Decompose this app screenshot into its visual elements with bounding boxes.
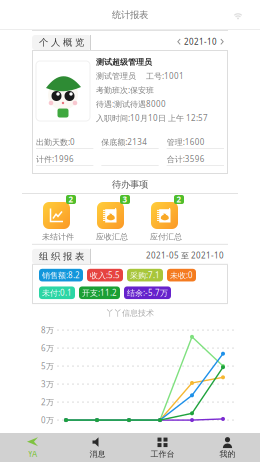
staticText: 2 [68,194,73,205]
staticText: 2021-10 [184,36,217,47]
staticText: 2万 [41,397,54,407]
staticText: 保底额:2134 [101,137,147,147]
staticText: 2021-05 至 2021-10 [146,250,224,261]
staticText: 0万 [41,415,54,425]
staticText: 待办事项 [112,179,148,190]
staticText: 工作台 [150,449,174,459]
staticText: 开支:11.2 [82,287,117,298]
staticText: 应付汇总 [150,232,182,242]
staticText: 销售额:8.2 [42,270,80,280]
staticText: 消息 [89,449,105,459]
button[interactable]: 2021-10 [177,36,228,50]
staticText: 收入:5.5 [90,270,120,280]
staticText: 丫丫信息技术 [106,308,154,318]
button[interactable]: 3 [85,195,139,242]
button[interactable]: 组 织 报 表 [32,249,91,264]
button[interactable]: 2 [31,195,85,242]
staticText: 应收汇总 [96,232,128,242]
staticText: 入职时间:10月10日 上午 12:57 [96,113,208,123]
staticText: 计件:1996 [36,154,74,164]
button[interactable]: 工作台 [130,433,195,462]
button[interactable]: 我的 [195,433,260,462]
staticText: 3万 [41,379,54,389]
staticText: 待遇:测试待遇8000 [96,99,166,109]
staticText: 3 [122,194,127,205]
button[interactable]: 2 [139,195,193,242]
staticText: 个 人 概 览 [39,37,84,48]
staticText: YA [28,449,37,459]
staticText: 管理:1600 [167,137,205,147]
staticText: 结余:-5.7万 [127,287,168,298]
staticText: 工号:1001 [146,71,184,81]
staticText: 我的 [219,449,235,459]
staticText: 8万 [41,325,54,335]
staticText: 采购:7.1 [130,270,160,280]
staticText: 未结计件 [42,232,74,242]
button[interactable]: 2021-05 至 2021-10 [146,250,228,264]
staticText: 测试管理员 [96,71,136,81]
staticText: 考勤班次:保安班 [96,85,154,95]
button[interactable]: YA [0,433,65,462]
button[interactable]: 个 人 概 览 [32,35,91,50]
staticText: 组 织 报 表 [39,251,84,262]
staticText: 合计:3596 [167,154,205,164]
staticText: 未付:0.1 [42,287,72,298]
button[interactable]: 消息 [65,433,130,462]
staticText: 统计报表 [112,9,148,21]
staticText: 5万 [41,361,54,371]
staticText: 测试超级管理员 [96,57,152,67]
staticText: 2 [176,194,181,205]
staticText: 未收:0 [170,270,193,280]
staticText: 出勤天数:0 [36,137,75,147]
button[interactable]: Network status [232,9,260,21]
staticText: 6万 [41,343,54,353]
